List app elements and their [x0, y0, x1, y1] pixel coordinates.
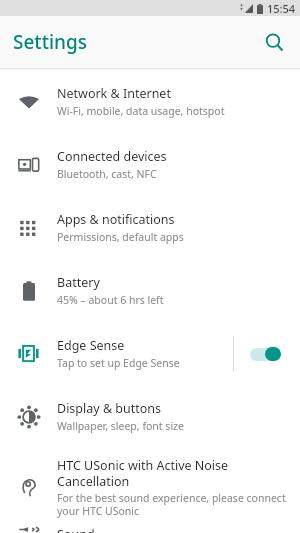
button[interactable]: Display & buttons: [0, 385, 300, 448]
staticText: Wallpaper, sleep, font size: [57, 419, 184, 433]
staticText: Display & buttons: [57, 400, 162, 417]
button[interactable]: Battery: [0, 259, 300, 322]
staticText: Permissions, default apps: [57, 230, 184, 244]
staticText: 45% – about 6 hrs left: [57, 293, 164, 307]
button[interactable]: Sound: [0, 526, 300, 533]
button[interactable]: Network & Internet: [0, 70, 300, 133]
button[interactable]: Apps & notifications: [0, 196, 300, 259]
staticText: 15:54: [267, 1, 296, 16]
staticText: HTC USonic with Active Noise Cancellatio…: [57, 457, 292, 489]
button[interactable]: Connected devices: [0, 133, 300, 196]
staticText: Battery: [57, 274, 100, 291]
staticText: Tap to set up Edge Sense: [57, 356, 180, 370]
staticText: Connected devices: [57, 148, 167, 165]
staticText: Network & Internet: [57, 85, 171, 102]
staticText: Bluetooth, cast, NFC: [57, 167, 157, 181]
button[interactable]: Edge Sense: [0, 322, 300, 385]
staticText: Wi-Fi, mobile, data usage, hotspot: [57, 104, 225, 118]
staticText: Apps & notifications: [57, 211, 175, 228]
button[interactable]: HTC USonic with Active Noise Cancellatio…: [0, 448, 300, 526]
button[interactable]: Search: [254, 22, 294, 62]
button[interactable]: Edge Sense toggle: [234, 322, 300, 385]
staticText: Sound: [57, 526, 95, 533]
staticText: Edge Sense: [57, 337, 125, 354]
staticText: For the best sound experience, please co…: [57, 491, 292, 518]
staticText: Settings: [13, 29, 87, 55]
